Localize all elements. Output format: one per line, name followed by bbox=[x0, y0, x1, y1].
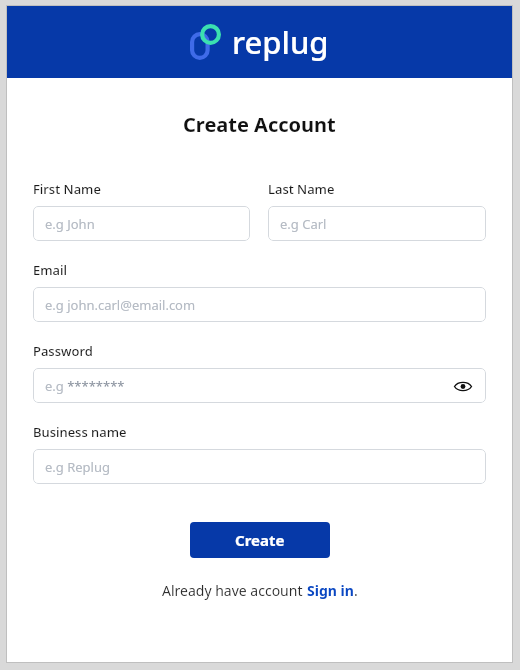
staticText: Business name bbox=[33, 423, 127, 441]
staticText: e.g Carl bbox=[280, 215, 327, 233]
button[interactable]: Create bbox=[190, 522, 330, 558]
button[interactable]: Sign in bbox=[307, 581, 354, 600]
staticText: . bbox=[354, 581, 358, 600]
staticText: replug bbox=[232, 21, 329, 63]
staticText: Last Name bbox=[268, 180, 335, 198]
staticText: Sign in bbox=[307, 581, 354, 600]
staticText: First Name bbox=[33, 180, 101, 198]
staticText: Create Account bbox=[183, 111, 336, 138]
staticText: Email bbox=[33, 261, 68, 279]
staticText: Password bbox=[33, 342, 93, 360]
staticText: e.g john.carl@email.com bbox=[45, 296, 196, 314]
button[interactable]: e.g ******** bbox=[33, 368, 486, 403]
staticText: e.g ******** bbox=[45, 377, 125, 395]
staticText: e.g Replug bbox=[45, 458, 110, 476]
button[interactable]: e.g John bbox=[33, 206, 250, 241]
staticText: Create bbox=[235, 530, 285, 550]
staticText: e.g John bbox=[45, 215, 95, 233]
button[interactable]: e.g Carl bbox=[268, 206, 486, 241]
staticText: Already have account bbox=[162, 581, 307, 600]
button[interactable]: e.g john.carl@email.com bbox=[33, 287, 486, 322]
button[interactable]: Show password bbox=[452, 375, 474, 397]
button[interactable]: e.g Replug bbox=[33, 449, 486, 484]
